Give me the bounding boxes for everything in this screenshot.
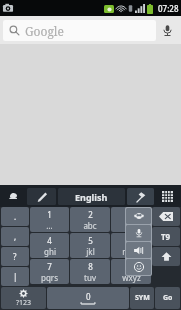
button[interactable]: Emoji xyxy=(126,259,151,275)
button[interactable]: Voice input xyxy=(127,188,154,205)
staticText: ?123 xyxy=(16,298,32,308)
staticText: ghi xyxy=(44,246,56,257)
button[interactable]: 4 xyxy=(30,233,69,258)
staticText: wxyz xyxy=(122,272,141,283)
button[interactable]: Voice xyxy=(126,225,151,241)
button[interactable]: Keyboard menu xyxy=(0,185,27,207)
button[interactable]: Sound xyxy=(126,242,151,258)
button[interactable]: Keyboard layouts xyxy=(154,185,181,207)
button[interactable]: English xyxy=(58,188,125,205)
staticText: 1 xyxy=(47,209,52,220)
button[interactable]: 9 xyxy=(111,259,151,284)
button[interactable]: | xyxy=(1,267,29,286)
button[interactable]: 3 xyxy=(111,207,151,232)
button[interactable]: Shift xyxy=(152,247,180,266)
staticText: English xyxy=(75,191,108,203)
staticText: 07:28 xyxy=(158,3,179,14)
button[interactable]: Settings and symbols xyxy=(1,287,46,309)
button[interactable]: Google xyxy=(3,20,156,41)
staticText: | xyxy=(13,271,18,282)
staticText: 8 xyxy=(88,261,93,272)
staticText: tuv xyxy=(84,272,96,283)
button[interactable]: 1 xyxy=(30,207,69,232)
staticText: def xyxy=(125,220,138,231)
staticText: … xyxy=(46,220,53,231)
button[interactable]: Voice search xyxy=(156,20,178,41)
button[interactable]: 2 xyxy=(70,207,110,232)
button[interactable]: Headset xyxy=(126,208,151,224)
button[interactable]: Go xyxy=(155,287,180,309)
staticText: 6 xyxy=(129,235,134,246)
button[interactable]: 6 xyxy=(111,233,151,258)
button[interactable]: . xyxy=(1,207,29,226)
button[interactable]: Handwriting xyxy=(27,188,56,205)
staticText: 0 xyxy=(86,291,91,302)
button[interactable]: 7 xyxy=(30,259,69,284)
staticText: mno xyxy=(122,246,140,257)
staticText: pqrs xyxy=(41,272,58,283)
staticText: jkl xyxy=(86,246,95,257)
staticText: . xyxy=(14,211,17,222)
staticText: 7 xyxy=(47,261,52,272)
staticText: 2 xyxy=(88,209,93,220)
button[interactable]: Space xyxy=(47,287,129,309)
button[interactable]: T9 xyxy=(152,227,180,246)
button[interactable]: 8 xyxy=(70,259,110,284)
staticText: 4 xyxy=(47,235,52,246)
button[interactable]: SYM xyxy=(130,287,154,309)
staticText: 5 xyxy=(88,235,93,246)
button[interactable]: , xyxy=(1,227,29,246)
staticText: ? xyxy=(13,251,17,262)
button[interactable]: 5 xyxy=(70,233,110,258)
staticText: SYM xyxy=(135,293,150,303)
staticText: T9 xyxy=(161,231,171,242)
button[interactable]: Delete xyxy=(152,207,180,226)
staticText: abc xyxy=(83,220,97,231)
staticText: , xyxy=(14,231,17,242)
staticText: Google xyxy=(25,23,65,39)
button[interactable]: ? xyxy=(1,247,29,266)
staticText: Go xyxy=(163,293,173,303)
